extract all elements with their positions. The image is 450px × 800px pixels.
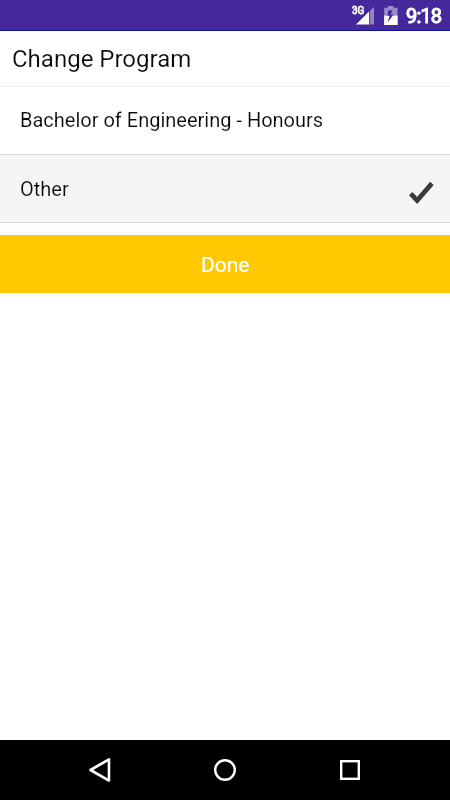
staticText: Other: [20, 177, 69, 200]
staticText: Done: [201, 253, 250, 278]
staticText: 3G: [352, 5, 365, 17]
button[interactable]: Recent apps: [328, 748, 372, 792]
staticText: 9:18: [406, 4, 442, 27]
button[interactable]: Done: [0, 235, 450, 293]
button[interactable]: Bachelor of Engineering - Honours: [0, 87, 450, 154]
staticText: Bachelor of Engineering - Honours: [20, 108, 324, 131]
staticText: Change Program: [12, 45, 192, 73]
button[interactable]: Back: [78, 748, 122, 792]
button[interactable]: Home: [203, 748, 247, 792]
button[interactable]: Other: [0, 155, 450, 222]
